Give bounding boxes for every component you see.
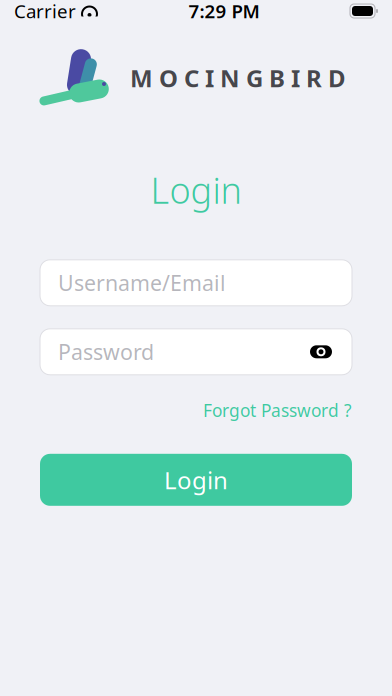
button[interactable]: Show password: [308, 339, 334, 365]
staticText: Password: [58, 338, 154, 366]
button[interactable]: Login: [40, 454, 352, 506]
button[interactable]: Forgot Password ?: [203, 399, 352, 422]
staticText: Login: [150, 166, 241, 214]
staticText: 7:29 PM: [188, 0, 259, 23]
staticText: M O C I N G B I R D: [130, 62, 346, 94]
staticText: Username/Email: [58, 269, 226, 297]
staticText: Carrier: [14, 0, 76, 23]
staticText: Forgot Password ?: [203, 399, 352, 422]
staticText: Login: [164, 464, 228, 496]
